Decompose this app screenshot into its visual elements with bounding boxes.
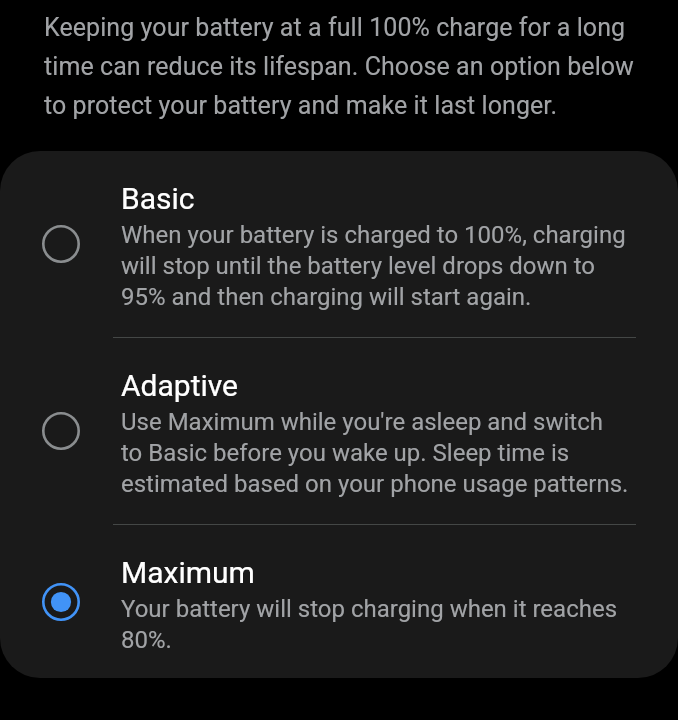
other: Adaptive, not selected xyxy=(42,412,80,450)
staticText: Use Maximum while you're asleep and swit… xyxy=(121,405,629,498)
button[interactable]: Maximum, selected xyxy=(0,525,678,678)
button[interactable]: Basic, not selected xyxy=(0,151,678,337)
staticText: Keeping your battery at a full 100% char… xyxy=(44,5,634,122)
staticText: When your battery is charged to 100%, ch… xyxy=(121,218,626,311)
button[interactable]: Adaptive, not selected xyxy=(0,338,678,524)
staticText: Basic xyxy=(121,176,195,218)
other: Maximum, selected xyxy=(42,583,80,621)
staticText: Your battery will stop charging when it … xyxy=(121,592,618,654)
staticText: Adaptive xyxy=(121,363,239,405)
staticText: Maximum xyxy=(121,550,255,592)
other: Basic, not selected xyxy=(42,225,80,263)
